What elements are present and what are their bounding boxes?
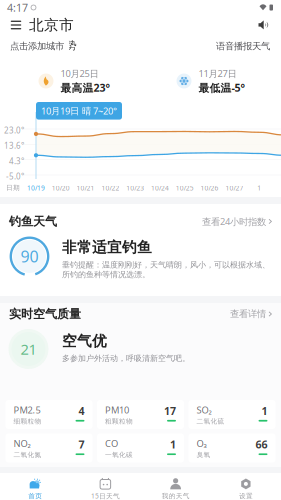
button[interactable]: PM2.5 [5, 400, 92, 429]
staticText: 细颗粒物 [13, 417, 41, 425]
staticText: 语音播报天气 [216, 40, 270, 52]
staticText: 17 [164, 404, 176, 418]
staticText: 66 [255, 437, 267, 451]
staticText: 1 [170, 437, 176, 451]
staticText: 10/23 [126, 184, 144, 192]
staticText: 天气趋势 [33, 39, 77, 52]
staticText: 一氧化碳 [105, 451, 133, 459]
button[interactable]: 设置 [211, 475, 281, 500]
staticText: 10月19日 晴 7~20° [41, 105, 117, 117]
button[interactable]: 语音播报天气 [211, 38, 275, 54]
staticText: 臭氧 [196, 451, 210, 459]
staticText: NO₂ [13, 437, 30, 450]
staticText: 4.3° [9, 156, 24, 166]
staticText: 10/19 [27, 184, 45, 192]
staticText: 最高温23° [60, 81, 110, 95]
staticText: 10/20 [52, 184, 70, 192]
staticText: 钓鱼天气 [9, 214, 57, 229]
staticText: PM2.5 [13, 404, 40, 416]
button[interactable]: 查看详情 [230, 305, 272, 323]
staticText: O₃ [196, 437, 206, 450]
staticText: 10/24 [151, 184, 169, 192]
staticText: 10/26 [201, 184, 219, 192]
button[interactable]: 15日天气 [70, 475, 140, 500]
staticText: 23.0° [4, 125, 24, 136]
button[interactable]: 查看24小时指数 [202, 212, 272, 231]
staticText: 4:17 [7, 0, 28, 15]
staticText: 北京市 [29, 16, 74, 34]
staticText: 粗颗粒物 [105, 417, 133, 425]
staticText: 非常适宜钓鱼 [62, 238, 152, 256]
staticText: 10/21 [77, 184, 95, 192]
staticText: 空气优 [62, 332, 107, 350]
staticText: 10/22 [101, 184, 119, 192]
staticText: 首页 [28, 492, 42, 500]
staticText: -5.0° [6, 171, 24, 182]
staticText: 15日天气 [91, 492, 120, 500]
staticText: 11月27日 [198, 67, 236, 80]
staticText: 21 [20, 339, 36, 359]
staticText: 最低温-5° [198, 81, 245, 95]
staticText: 10/25 [176, 184, 194, 192]
button[interactable]: 点击添加城市 [5, 38, 69, 54]
staticText: 二氧化氮 [13, 451, 41, 459]
staticText: SO₂ [196, 404, 211, 416]
button[interactable]: SO₂ [188, 400, 275, 429]
staticText: 查看24小时指数 [202, 215, 266, 228]
staticText: 7 [78, 437, 84, 451]
button[interactable]: 菜单 [5, 15, 27, 35]
staticText: 实时空气质量 [9, 307, 81, 321]
button[interactable]: 语音播报 [253, 15, 275, 35]
button[interactable]: 我的天气 [140, 475, 211, 500]
button[interactable]: PM10 [97, 400, 184, 429]
staticText: 1 [257, 184, 261, 192]
staticText: 垂钓提醒：温度刚刚好，天气晴朗，风小，可以根据水域、所钓的鱼种等情况选漂。 [62, 260, 270, 280]
staticText: 设置 [239, 492, 253, 500]
staticText: 10/27 [225, 184, 243, 192]
staticText: 查看详情 [230, 308, 266, 320]
button[interactable]: CO [97, 433, 184, 462]
staticText: 1 [261, 404, 267, 418]
staticText: 13.6° [4, 140, 24, 151]
staticText: 多参加户外活动，呼吸清新空气吧。 [62, 353, 190, 363]
button[interactable]: NO₂ [5, 433, 92, 462]
staticText: CO [105, 437, 118, 450]
staticText: 我的天气 [162, 492, 190, 500]
staticText: 点击添加城市 [10, 40, 64, 52]
staticText: 二氧化硫 [196, 417, 224, 425]
button[interactable]: O₃ [188, 433, 275, 462]
staticText: 90 [20, 246, 38, 267]
button[interactable]: 北京市 [27, 15, 76, 35]
staticText: 日期 [6, 184, 20, 192]
staticText: 4 [78, 404, 84, 418]
staticText: PM10 [105, 404, 129, 416]
button[interactable]: 首页 [0, 475, 70, 500]
staticText: 10月25日 [60, 67, 98, 80]
